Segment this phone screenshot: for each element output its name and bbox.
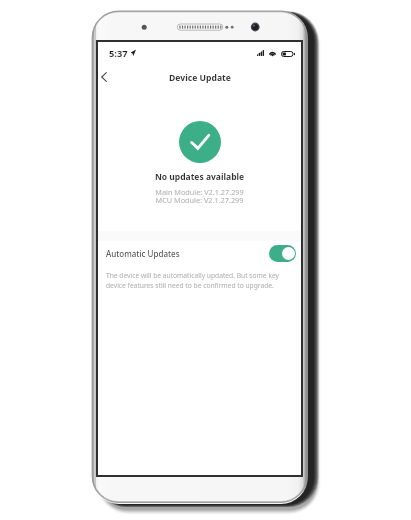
staticText: MCU Module: V2.1.27.299 <box>96 195 303 205</box>
staticText: 5:37 <box>109 47 128 60</box>
button[interactable]: Back <box>98 71 110 83</box>
button[interactable]: Automatic Updates toggle, on <box>269 245 296 262</box>
staticText: No updates available <box>96 171 303 183</box>
staticText: Device Update <box>169 72 231 84</box>
button[interactable]: Automatic Updates <box>96 237 303 269</box>
staticText: Main Module: V2.1.27.299 <box>96 187 303 197</box>
staticText: Automatic Updates <box>106 248 180 259</box>
staticText: device features still need to be confirm… <box>106 281 274 290</box>
staticText: The device will be automatically updated… <box>106 271 280 280</box>
